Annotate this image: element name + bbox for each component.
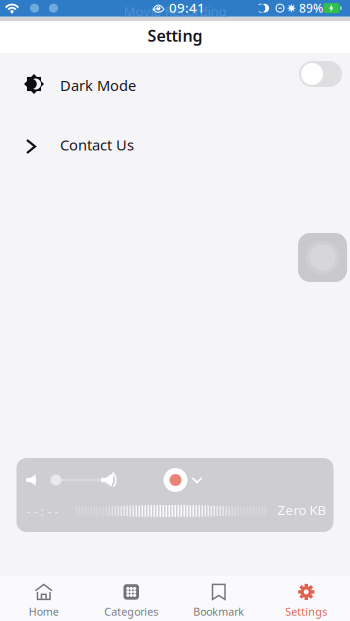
staticText: Home: [29, 604, 59, 619]
staticText: Dark Mode: [60, 75, 136, 95]
staticText: Zero KB: [277, 501, 326, 519]
button[interactable]: Settings: [262, 576, 350, 621]
button[interactable]: Bookmark: [175, 576, 262, 621]
button[interactable]: Dark Mode: [0, 53, 350, 115]
staticText: Setting: [147, 25, 202, 46]
staticText: 89%: [299, 0, 323, 16]
button[interactable]: Categories: [87, 576, 175, 621]
staticText: Bookmark: [193, 604, 244, 619]
staticText: - - : - -: [26, 502, 58, 520]
staticText: Settings: [285, 604, 327, 619]
staticText: Movie Recording: [123, 2, 226, 20]
staticText: Categories: [104, 604, 158, 619]
staticText: 09:41: [169, 0, 205, 16]
button[interactable]: Screen recorder: [298, 233, 347, 282]
button[interactable]: Home: [0, 576, 87, 621]
staticText: Contact Us: [60, 135, 134, 154]
button[interactable]: Contact Us: [0, 115, 350, 175]
